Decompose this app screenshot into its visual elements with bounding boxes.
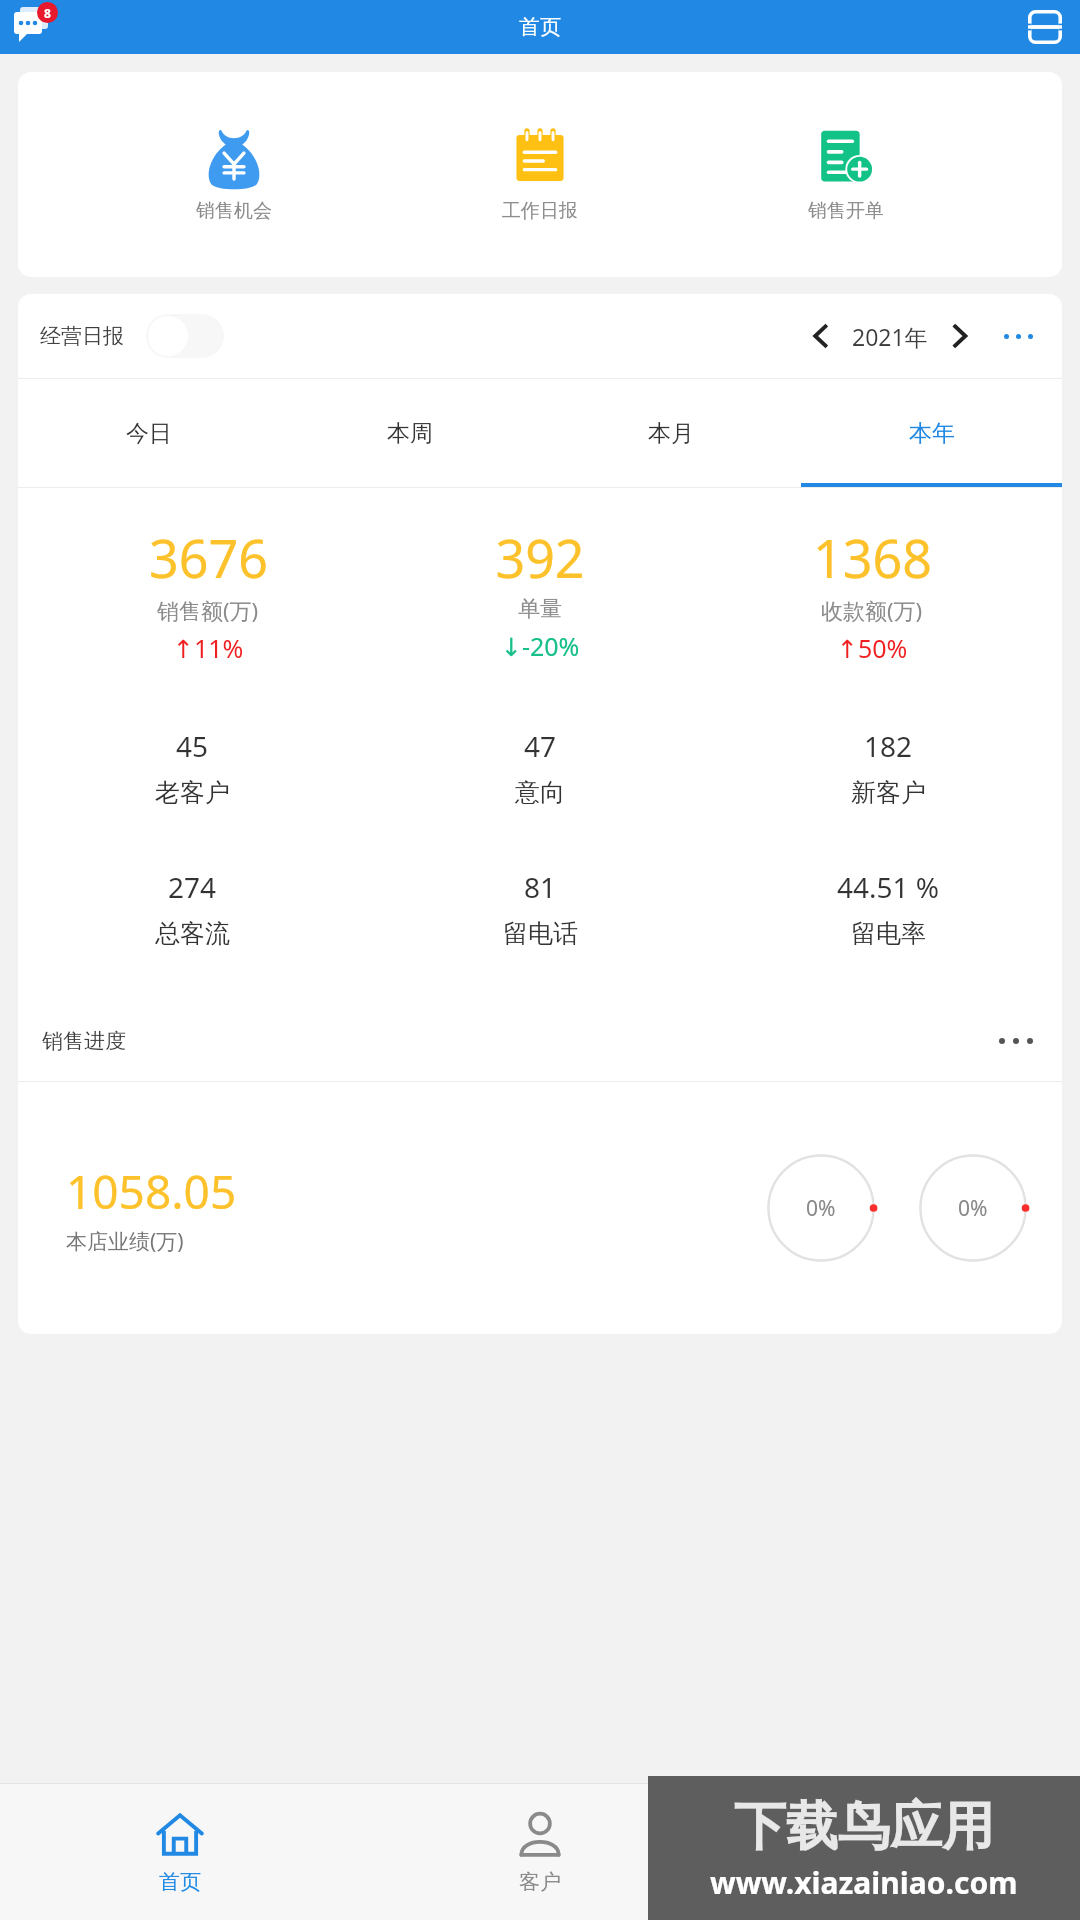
staticText: 留电率 [851,918,926,949]
staticText: ↑50% [837,631,908,665]
button[interactable]: 44.51 % [714,868,1062,949]
button[interactable]: More [994,1019,1038,1063]
staticText: 我的 [879,1869,921,1895]
staticText: 销售进度 [42,1028,126,1054]
button[interactable]: More options [996,314,1040,358]
staticText: 本年 [909,419,955,448]
button[interactable]: 182 [714,727,1062,808]
button[interactable]: 销售机会 [144,121,324,229]
staticText: 新客户 [851,777,926,808]
button[interactable]: 客户 [360,1784,720,1920]
staticText: 老客户 [155,777,230,808]
button[interactable]: 我的 [720,1784,1080,1920]
button[interactable]: 销售开单 [756,121,936,229]
staticText: 本周 [387,419,433,448]
button[interactable]: 今日 [18,379,279,487]
staticText: 0% [958,1194,988,1223]
staticText: 392 [495,522,585,593]
staticText: 今日 [126,419,172,448]
button[interactable]: 工作日报 [450,121,630,229]
staticText: 8 [44,5,51,21]
button[interactable]: 本月 [540,379,801,487]
staticText: 182 [864,727,913,765]
staticText: 单量 [518,595,562,623]
staticText: 本月 [648,419,694,448]
button[interactable]: 本年 [801,379,1062,487]
staticText: 45 [176,727,209,765]
staticText: 3676 [149,522,268,593]
staticText: 总客流 [155,918,230,949]
staticText: 81 [524,868,557,906]
staticText: 留电话 [503,918,578,949]
button[interactable]: 3676 [42,522,374,665]
button[interactable]: 销售进度 [42,1001,1038,1081]
staticText: 47 [524,727,557,765]
staticText: 销售开单 [808,199,884,223]
staticText: 1368 [813,522,932,593]
staticText: 经营日报 [40,323,124,349]
button[interactable]: Next year [938,314,982,358]
staticText: 44.51 % [837,868,940,906]
staticText: www.xiazainiao.com [710,1862,1018,1903]
staticText: 收款额(万) [821,595,923,625]
button[interactable]: 81 [366,868,714,949]
button[interactable]: Scan [1022,4,1068,50]
staticText: ↑11% [173,631,244,665]
staticText: 客户 [519,1869,561,1895]
button[interactable]: 47 [366,727,714,808]
staticText: 工作日报 [502,199,578,223]
button[interactable]: 45 [18,727,366,808]
staticText: 下载鸟应用 [734,1794,994,1860]
staticText: 274 [168,868,217,906]
button[interactable]: Toggle daily report [146,314,224,358]
staticText: 2021年 [852,321,928,352]
button[interactable]: Messages [8,1,60,53]
staticText: 首页 [159,1869,201,1895]
staticText: 销售机会 [196,199,272,223]
staticText: 1058.05 [66,1160,237,1223]
button[interactable]: 1368 [706,522,1038,665]
button[interactable]: 首页 [0,1784,360,1920]
button[interactable]: 274 [18,868,366,949]
button[interactable]: 本周 [279,379,540,487]
staticText: 意向 [515,777,565,808]
button[interactable]: 392 [374,522,706,663]
button[interactable]: Previous year [798,314,842,358]
staticText: 销售额(万) [157,595,259,625]
staticText: 本店业绩(万) [66,1227,184,1256]
staticText: 首页 [519,14,561,40]
staticText: 0% [806,1194,836,1223]
staticText: ↓-20% [501,629,580,663]
